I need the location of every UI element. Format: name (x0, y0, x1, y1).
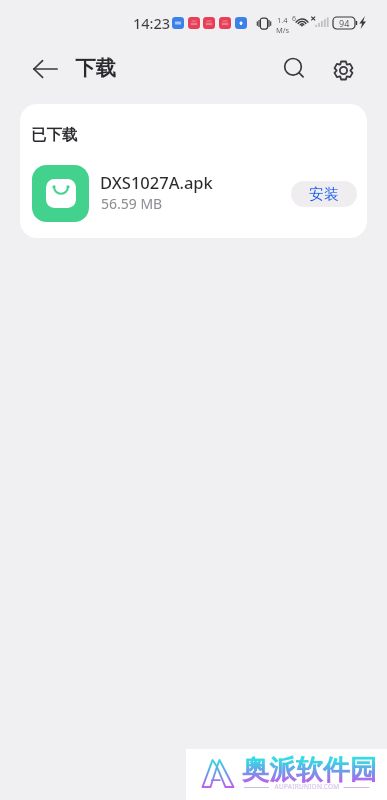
staticText: 奥派软件园 (242, 753, 377, 787)
staticText: 安装 (309, 185, 339, 204)
staticText: AUPAIRUNION.COM (272, 782, 342, 791)
button[interactable]: 安装 (291, 181, 357, 207)
staticText: DXS1027A.apk (100, 171, 213, 193)
staticText: 6 (292, 14, 297, 24)
button[interactable]: Back (22, 45, 69, 92)
staticText: 已下载 (31, 125, 78, 145)
staticText: 下载 (75, 55, 116, 81)
staticText: 94 (339, 17, 350, 29)
staticText: 56.59 MB (101, 194, 163, 213)
staticText: 14:23 (133, 13, 171, 33)
button[interactable]: Search (272, 46, 318, 92)
staticText: 1.4 (277, 15, 288, 25)
staticText: M/s (276, 25, 290, 35)
button[interactable]: Settings (320, 47, 366, 93)
